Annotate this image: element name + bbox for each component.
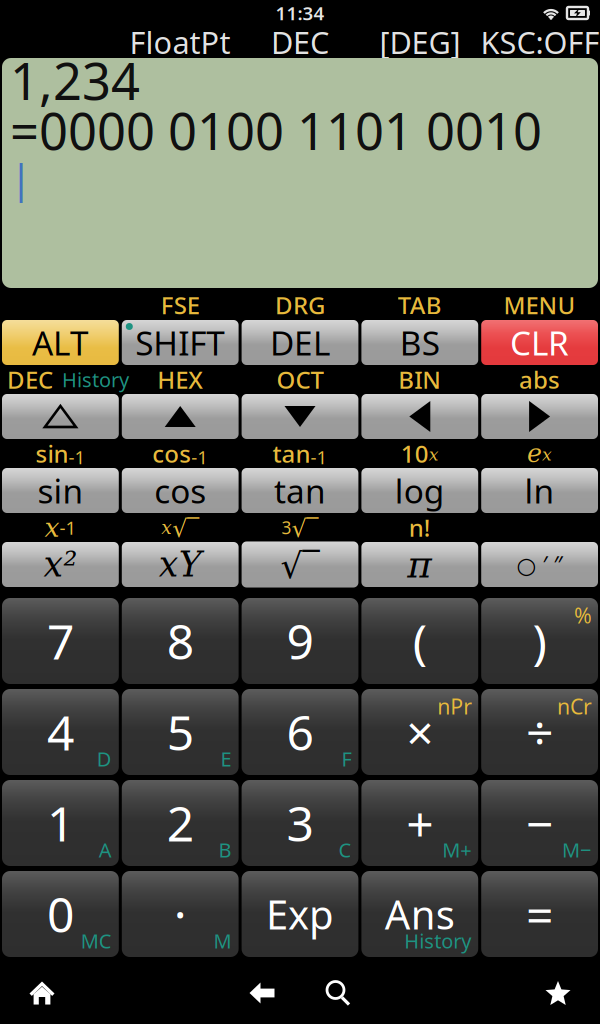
button[interactable]: Back bbox=[224, 962, 300, 1024]
button[interactable]: 6 bbox=[242, 689, 358, 775]
button[interactable]: 5 bbox=[122, 689, 239, 775]
staticText: [DEG] bbox=[379, 22, 460, 62]
button[interactable]: 2 bbox=[122, 780, 239, 866]
button[interactable]: ( bbox=[361, 598, 478, 684]
staticText: OCT bbox=[276, 364, 323, 395]
button[interactable]: DEC bbox=[240, 26, 360, 58]
staticText: = bbox=[526, 882, 553, 946]
button[interactable]: Down bbox=[242, 394, 358, 439]
staticText: ○ ′ ″ bbox=[517, 549, 563, 579]
button[interactable]: × bbox=[361, 689, 478, 775]
staticText: =0000 0100 1101 0010 bbox=[10, 97, 542, 164]
button[interactable]: Ans bbox=[361, 871, 478, 957]
button[interactable]: Exp bbox=[242, 871, 358, 957]
staticText: π bbox=[407, 543, 432, 586]
staticText: KSC:OFF bbox=[480, 22, 599, 62]
staticText: B bbox=[219, 836, 232, 863]
staticText: x bbox=[44, 512, 59, 543]
button[interactable]: ) bbox=[481, 598, 598, 684]
staticText: DEL bbox=[270, 320, 330, 365]
staticText: 11:34 bbox=[275, 1, 324, 25]
button[interactable]: + bbox=[361, 780, 478, 866]
button[interactable]: Left bbox=[361, 394, 478, 439]
staticText: sin bbox=[35, 438, 68, 469]
staticText: Exp bbox=[266, 887, 334, 940]
staticText: CLR bbox=[510, 320, 569, 365]
button[interactable]: BS bbox=[361, 320, 478, 365]
staticText: tan bbox=[274, 468, 326, 513]
button[interactable]: 7 bbox=[2, 598, 119, 684]
button[interactable]: cos bbox=[122, 468, 239, 513]
button[interactable]: Favorites bbox=[516, 962, 600, 1024]
button[interactable]: √‾ bbox=[242, 542, 358, 587]
staticText: 1 bbox=[47, 791, 74, 855]
staticText: HEX bbox=[157, 364, 203, 395]
staticText: -1 bbox=[191, 444, 208, 469]
button[interactable]: 8 bbox=[122, 598, 239, 684]
staticText: ÷ bbox=[526, 700, 553, 764]
button[interactable]: ln bbox=[481, 468, 598, 513]
button[interactable]: = bbox=[481, 871, 598, 957]
button[interactable]: π bbox=[361, 542, 478, 587]
staticText: × bbox=[406, 700, 433, 764]
button[interactable]: Up bbox=[122, 394, 239, 439]
staticText: 3 bbox=[286, 791, 313, 855]
button[interactable]: ÷ bbox=[481, 689, 598, 775]
staticText: 7 bbox=[47, 609, 74, 673]
staticText: 10 bbox=[401, 438, 429, 469]
staticText: 5 bbox=[167, 700, 194, 764]
staticText: BS bbox=[400, 320, 440, 365]
staticText: ) bbox=[533, 609, 547, 673]
staticText: ( bbox=[413, 609, 427, 673]
staticText: History bbox=[62, 366, 129, 393]
button[interactable]: sin bbox=[2, 468, 119, 513]
button[interactable]: 9 bbox=[242, 598, 358, 684]
staticText: √‾ bbox=[291, 512, 318, 543]
staticText: x bbox=[429, 444, 439, 465]
staticText: FloatPt bbox=[129, 22, 230, 62]
staticText: | bbox=[10, 151, 32, 204]
staticText: sin bbox=[37, 468, 83, 513]
staticText: E bbox=[221, 745, 232, 772]
button[interactable]: CLR bbox=[481, 320, 598, 365]
button[interactable]: FloatPt bbox=[120, 26, 240, 58]
staticText: √‾ bbox=[172, 512, 199, 543]
button[interactable]: KSC:OFF bbox=[480, 26, 600, 58]
staticText: 6 bbox=[286, 700, 313, 764]
staticText: · bbox=[174, 882, 187, 946]
button[interactable]: Home bbox=[0, 962, 84, 1024]
staticText: abs bbox=[519, 364, 560, 395]
staticText: M bbox=[214, 927, 232, 954]
button[interactable]: − bbox=[481, 780, 598, 866]
staticText: √‾ bbox=[280, 541, 319, 587]
staticText: cos bbox=[152, 438, 191, 469]
staticText: D bbox=[97, 745, 112, 772]
staticText: tan bbox=[272, 438, 310, 469]
button[interactable]: DEL bbox=[242, 320, 358, 365]
staticText: ALT bbox=[32, 320, 89, 365]
staticText: 9 bbox=[286, 609, 313, 673]
staticText: n! bbox=[409, 512, 431, 543]
staticText: DEC bbox=[271, 22, 329, 62]
button[interactable]: log bbox=[361, 468, 478, 513]
button[interactable]: ALT bbox=[2, 320, 119, 365]
staticText: 2 bbox=[167, 791, 194, 855]
button[interactable]: [DEG] bbox=[360, 26, 480, 58]
button[interactable]: Up outline bbox=[2, 394, 119, 439]
button[interactable]: Right bbox=[481, 394, 598, 439]
button[interactable]: 3 bbox=[242, 780, 358, 866]
staticText: x bbox=[161, 517, 172, 538]
button[interactable]: tan bbox=[242, 468, 358, 513]
button[interactable]: xY bbox=[122, 542, 239, 587]
button[interactable]: x² bbox=[2, 542, 119, 587]
staticText: SHIFT bbox=[135, 320, 225, 365]
button[interactable]: SHIFT bbox=[122, 320, 239, 365]
button[interactable]: ○ ′ ″ bbox=[481, 542, 598, 587]
button[interactable]: 0 bbox=[2, 871, 119, 957]
button[interactable]: 1 bbox=[2, 780, 119, 866]
button[interactable]: 4 bbox=[2, 689, 119, 775]
button[interactable]: Search bbox=[300, 962, 376, 1024]
staticText: TAB bbox=[398, 289, 442, 321]
button[interactable]: · bbox=[122, 871, 239, 957]
staticText: M+ bbox=[442, 836, 471, 863]
